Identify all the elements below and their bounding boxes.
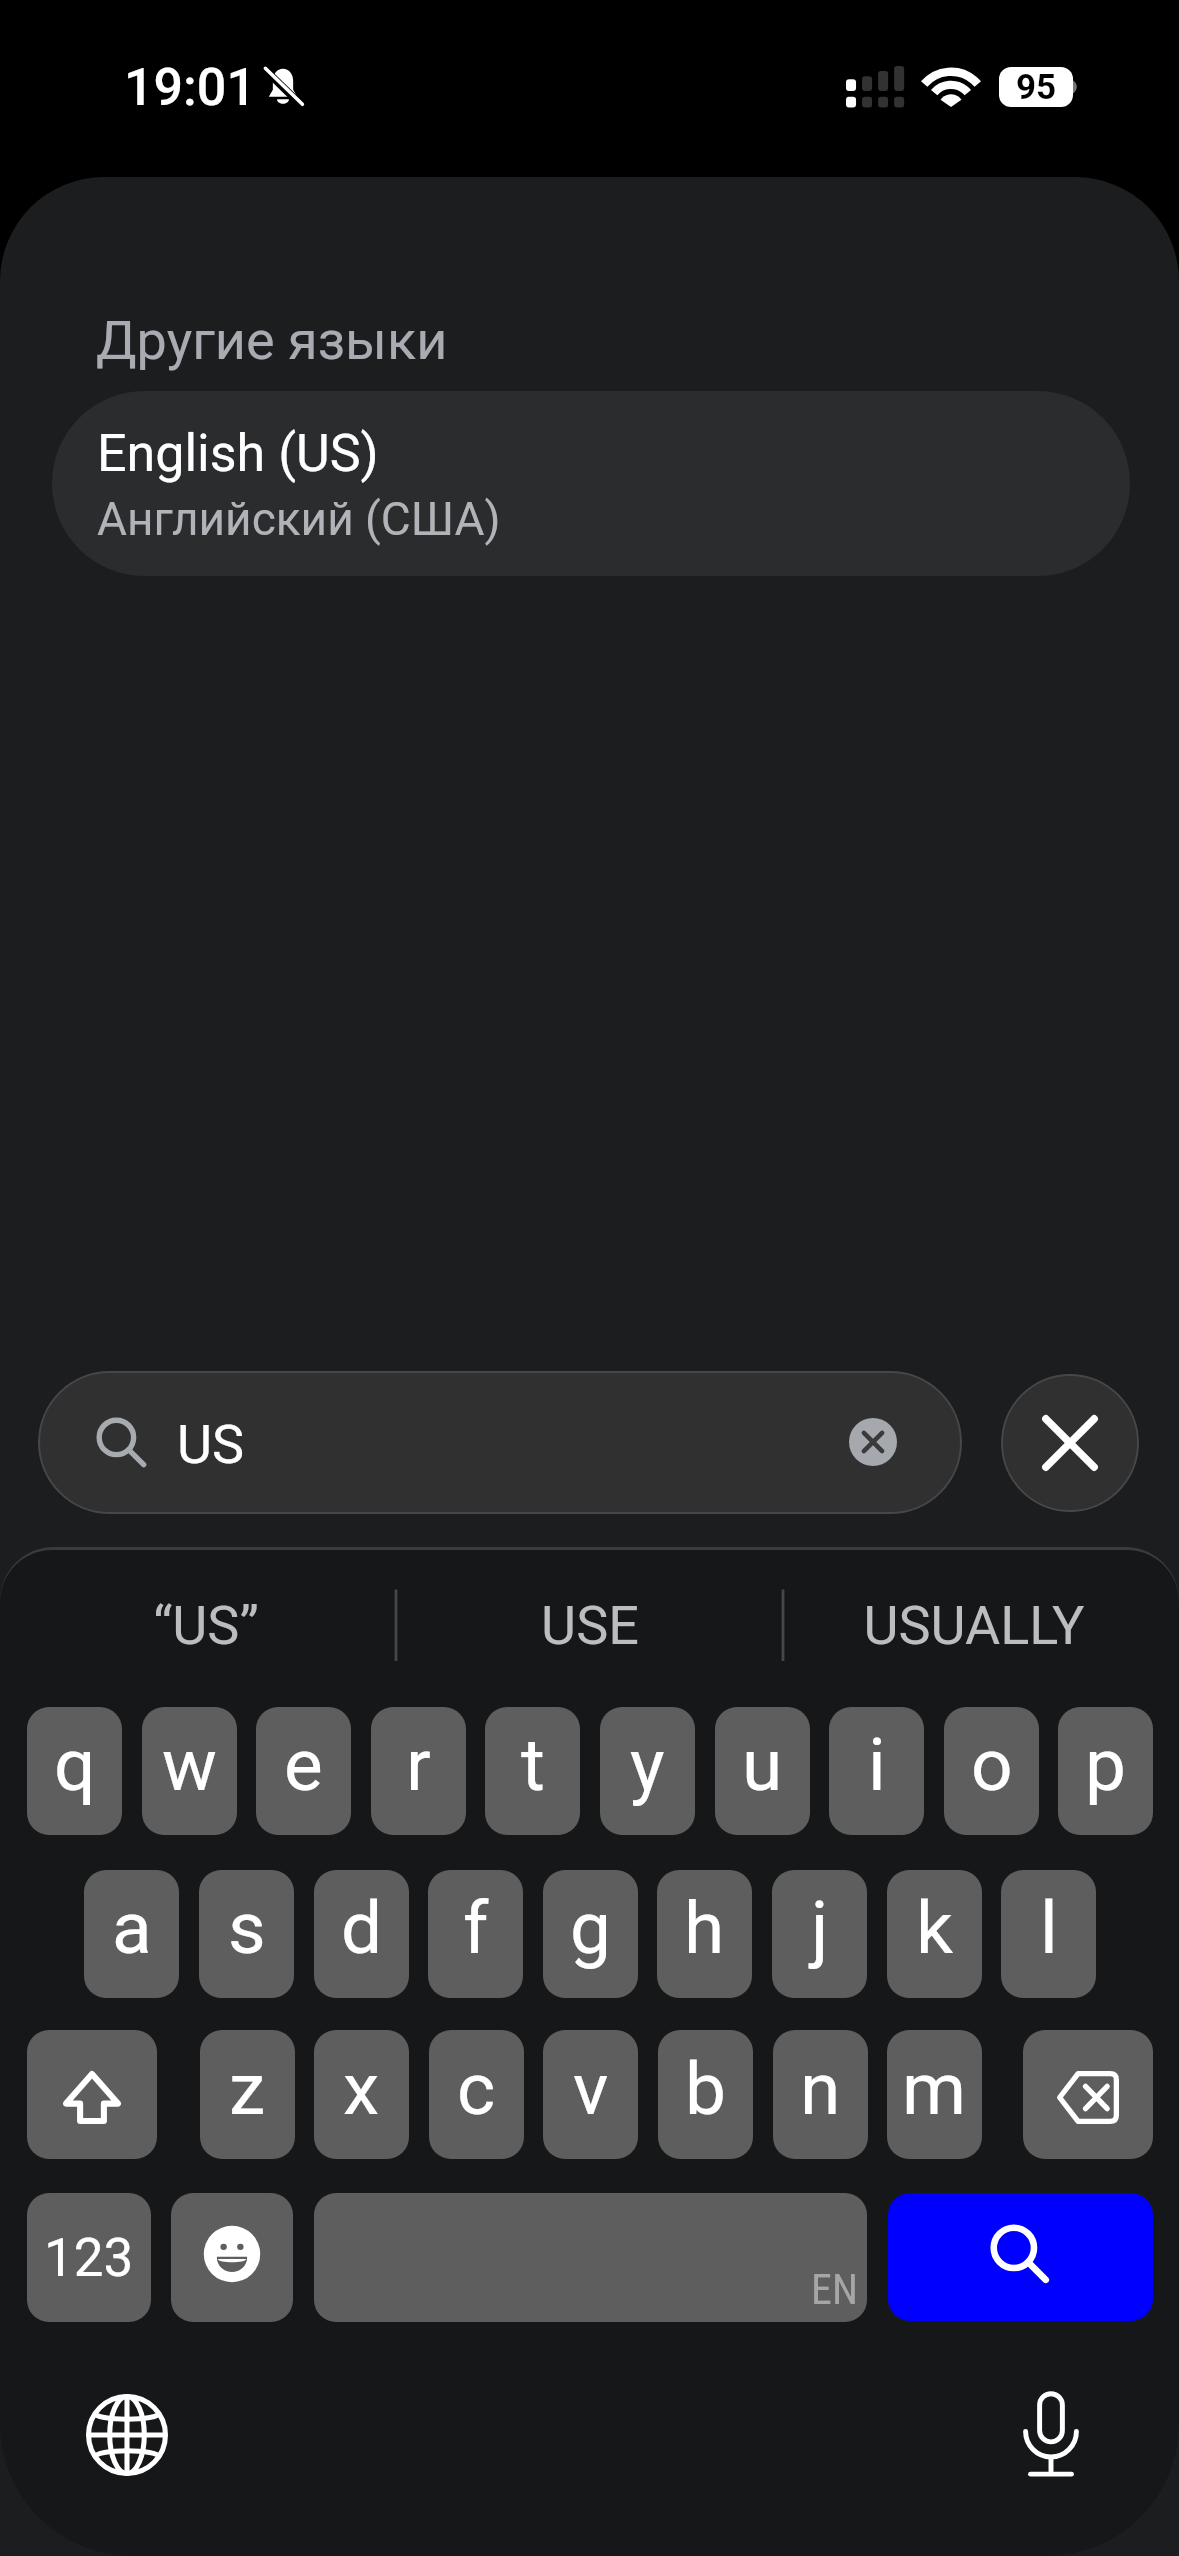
button[interactable]: g bbox=[543, 1870, 638, 1998]
staticText: q bbox=[54, 1722, 96, 1808]
button[interactable]: USE bbox=[397, 1550, 782, 1700]
staticText: Английский (США) bbox=[97, 492, 501, 546]
button[interactable]: i bbox=[829, 1707, 924, 1835]
staticText: k bbox=[916, 1885, 953, 1971]
staticText: a bbox=[112, 1885, 152, 1971]
button[interactable]: w bbox=[142, 1707, 237, 1835]
staticText: g bbox=[570, 1885, 611, 1971]
staticText: USE bbox=[541, 1594, 639, 1657]
button[interactable]: English (US) bbox=[52, 391, 1130, 576]
staticText: f bbox=[463, 1885, 489, 1971]
button[interactable]: Close search bbox=[1001, 1374, 1139, 1512]
button[interactable]: a bbox=[84, 1870, 179, 1998]
button[interactable]: Change language bbox=[68, 2376, 186, 2494]
staticText: 123 bbox=[44, 2227, 134, 2289]
staticText: t bbox=[521, 1722, 545, 1808]
button[interactable]: o bbox=[944, 1707, 1039, 1835]
button[interactable]: m bbox=[887, 2030, 982, 2159]
staticText: c bbox=[457, 2046, 496, 2132]
button[interactable]: Space bbox=[314, 2193, 867, 2322]
button[interactable]: d bbox=[314, 1870, 409, 1998]
button[interactable]: q bbox=[27, 1707, 122, 1835]
button[interactable]: p bbox=[1058, 1707, 1153, 1835]
button[interactable]: v bbox=[543, 2030, 638, 2159]
button[interactable]: k bbox=[887, 1870, 982, 1998]
staticText: e bbox=[284, 1722, 323, 1808]
staticText: w bbox=[162, 1722, 217, 1808]
staticText: l bbox=[1040, 1885, 1058, 1971]
staticText: o bbox=[971, 1722, 1013, 1808]
button[interactable]: Voice input bbox=[992, 2376, 1110, 2494]
button[interactable]: 123 bbox=[27, 2193, 151, 2322]
staticText: “US” bbox=[153, 1594, 259, 1657]
button[interactable]: Search bbox=[888, 2193, 1153, 2321]
staticText: y bbox=[630, 1722, 665, 1808]
staticText: English (US) bbox=[97, 423, 379, 484]
button[interactable]: t bbox=[485, 1707, 580, 1835]
staticText: j bbox=[811, 1885, 829, 1971]
button[interactable]: s bbox=[199, 1870, 294, 1998]
button[interactable]: USUALLY bbox=[781, 1550, 1166, 1700]
button[interactable]: c bbox=[429, 2030, 524, 2159]
button[interactable]: Shift bbox=[27, 2030, 157, 2159]
button[interactable]: y bbox=[600, 1707, 695, 1835]
button[interactable]: n bbox=[773, 2030, 868, 2159]
staticText: r bbox=[406, 1722, 431, 1808]
button[interactable]: b bbox=[658, 2030, 753, 2159]
staticText: Другие языки bbox=[96, 309, 448, 372]
button[interactable]: j bbox=[772, 1870, 867, 1998]
staticText: u bbox=[742, 1722, 783, 1808]
staticText: v bbox=[573, 2046, 609, 2132]
button[interactable]: Emoji bbox=[171, 2193, 293, 2322]
button[interactable]: US bbox=[38, 1371, 962, 1514]
staticText: US bbox=[177, 1413, 245, 1476]
staticText: EN bbox=[811, 2265, 858, 2314]
staticText: x bbox=[343, 2046, 380, 2132]
staticText: d bbox=[341, 1885, 383, 1971]
staticText: n bbox=[800, 2046, 841, 2132]
button[interactable]: Backspace bbox=[1023, 2030, 1153, 2159]
button[interactable]: Clear text bbox=[849, 1418, 897, 1466]
staticText: 19:01 bbox=[124, 57, 256, 118]
button[interactable]: “US” bbox=[13, 1550, 398, 1700]
button[interactable]: r bbox=[371, 1707, 466, 1835]
staticText: USUALLY bbox=[863, 1594, 1085, 1657]
button[interactable]: z bbox=[200, 2030, 295, 2159]
button[interactable]: e bbox=[256, 1707, 351, 1835]
button[interactable]: l bbox=[1001, 1870, 1096, 1998]
button[interactable]: u bbox=[715, 1707, 810, 1835]
staticText: b bbox=[685, 2046, 726, 2132]
staticText: 95 bbox=[1016, 67, 1057, 107]
button[interactable]: f bbox=[428, 1870, 523, 1998]
staticText: h bbox=[684, 1885, 725, 1971]
staticText: z bbox=[229, 2046, 266, 2132]
staticText: m bbox=[902, 2046, 967, 2132]
staticText: i bbox=[868, 1722, 886, 1808]
staticText: p bbox=[1085, 1722, 1126, 1808]
button[interactable]: h bbox=[657, 1870, 752, 1998]
staticText: s bbox=[228, 1885, 266, 1971]
button[interactable]: x bbox=[314, 2030, 409, 2159]
